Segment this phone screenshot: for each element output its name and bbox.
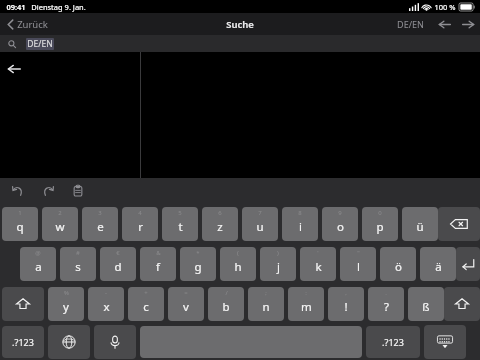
staticText: y [63, 299, 69, 315]
staticText: , [345, 289, 347, 297]
staticText: ( [237, 249, 239, 257]
staticText: * [196, 249, 200, 257]
staticText: x [103, 299, 110, 315]
button[interactable]: - [88, 287, 124, 321]
button[interactable]: Diktieren [94, 325, 136, 359]
button[interactable]: DE/EN [0, 35, 480, 52]
staticText: ü [416, 219, 424, 235]
button[interactable]: ß [408, 287, 444, 321]
button[interactable]: " [340, 247, 376, 281]
staticText: DE/EN [397, 18, 424, 30]
staticText: a [35, 259, 42, 275]
staticText: h [234, 259, 242, 275]
button[interactable]: Eingabe [456, 247, 480, 281]
button[interactable]: * [180, 247, 216, 281]
button[interactable]: 3 [82, 207, 118, 241]
button[interactable]: .?123 [2, 326, 44, 358]
button[interactable]: 1 [2, 207, 38, 241]
button[interactable]: 5 [162, 207, 198, 241]
button[interactable]: ö [380, 247, 416, 281]
staticText: f [156, 259, 160, 275]
button[interactable]: & [140, 247, 176, 281]
staticText: ? [384, 299, 389, 315]
button[interactable]: DE/EN [394, 15, 427, 33]
staticText: DE/EN [27, 38, 53, 50]
button[interactable]: Zurück navigieren [436, 16, 452, 32]
button[interactable]: ' [300, 247, 336, 281]
button[interactable]: 2 [42, 207, 78, 241]
button[interactable]: Umschalt [2, 287, 44, 321]
button[interactable]: 0 [362, 207, 398, 241]
staticText: q [16, 219, 24, 235]
staticText: % [64, 289, 69, 297]
staticText: 100 % [434, 2, 456, 12]
button[interactable]: 4 [122, 207, 158, 241]
button[interactable]: Zurück [5, 60, 23, 78]
button[interactable]: Tastatur wechseln [48, 325, 90, 359]
button[interactable]: / [208, 287, 244, 321]
button[interactable]: . [368, 287, 404, 321]
button[interactable]: 6 [202, 207, 238, 241]
staticText: ) [277, 249, 279, 257]
staticText: 8 [298, 209, 302, 217]
button[interactable]: Umschalt [444, 287, 480, 321]
staticText: & [156, 249, 161, 257]
button[interactable]: : [288, 287, 324, 321]
button[interactable]: Löschen [438, 207, 480, 241]
staticText: 7 [258, 209, 262, 217]
staticText: " [357, 249, 360, 257]
button[interactable]: € [100, 247, 136, 281]
staticText: ! [344, 299, 348, 315]
staticText: ä [435, 259, 442, 275]
button[interactable]: = [168, 287, 204, 321]
staticText: d [114, 259, 122, 275]
staticText: .?123 [382, 336, 404, 348]
staticText: u [256, 219, 264, 235]
staticText: 2 [58, 209, 62, 217]
staticText: + [144, 289, 148, 297]
button[interactable]: 9 [322, 207, 358, 241]
button[interactable]: % [48, 287, 84, 321]
staticText: z [217, 219, 223, 235]
staticText: s [75, 259, 81, 275]
staticText: : [305, 289, 307, 297]
button[interactable]: Wiederholen [40, 183, 56, 199]
staticText: k [315, 259, 322, 275]
staticText: .?123 [12, 336, 34, 348]
button[interactable]: Einsetzen [70, 183, 86, 199]
staticText: v [183, 299, 189, 315]
staticText: € [116, 249, 120, 257]
staticText: Zurück [17, 18, 48, 31]
button[interactable]: ä [420, 247, 456, 281]
staticText: 0 [378, 209, 382, 217]
button[interactable]: # [60, 247, 96, 281]
button[interactable]: + [128, 287, 164, 321]
staticText: ; [265, 289, 267, 297]
button[interactable]: @ [20, 247, 56, 281]
staticText: 09:41 [6, 2, 26, 12]
staticText: Suche [226, 18, 254, 31]
button[interactable]: Zurück [4, 15, 51, 34]
button[interactable]: ü [402, 207, 438, 241]
button[interactable]: ; [248, 287, 284, 321]
staticText: ö [395, 259, 402, 275]
staticText: l [357, 259, 360, 275]
staticText: 5 [178, 209, 182, 217]
staticText: c [143, 299, 149, 315]
button[interactable]: 7 [242, 207, 278, 241]
button[interactable]: ( [220, 247, 256, 281]
button[interactable]: Tastatur ausblenden [424, 325, 466, 359]
button[interactable]: 8 [282, 207, 318, 241]
button[interactable]: Vorwärts navigieren [460, 16, 476, 32]
button[interactable]: , [328, 287, 364, 321]
staticText: i [299, 219, 302, 235]
button[interactable]: .?123 [366, 326, 420, 358]
staticText: # [76, 249, 80, 257]
staticText: / [225, 289, 228, 297]
button[interactable]: ) [260, 247, 296, 281]
button[interactable]: Rückgängig [10, 183, 26, 199]
staticText: o [337, 219, 344, 235]
